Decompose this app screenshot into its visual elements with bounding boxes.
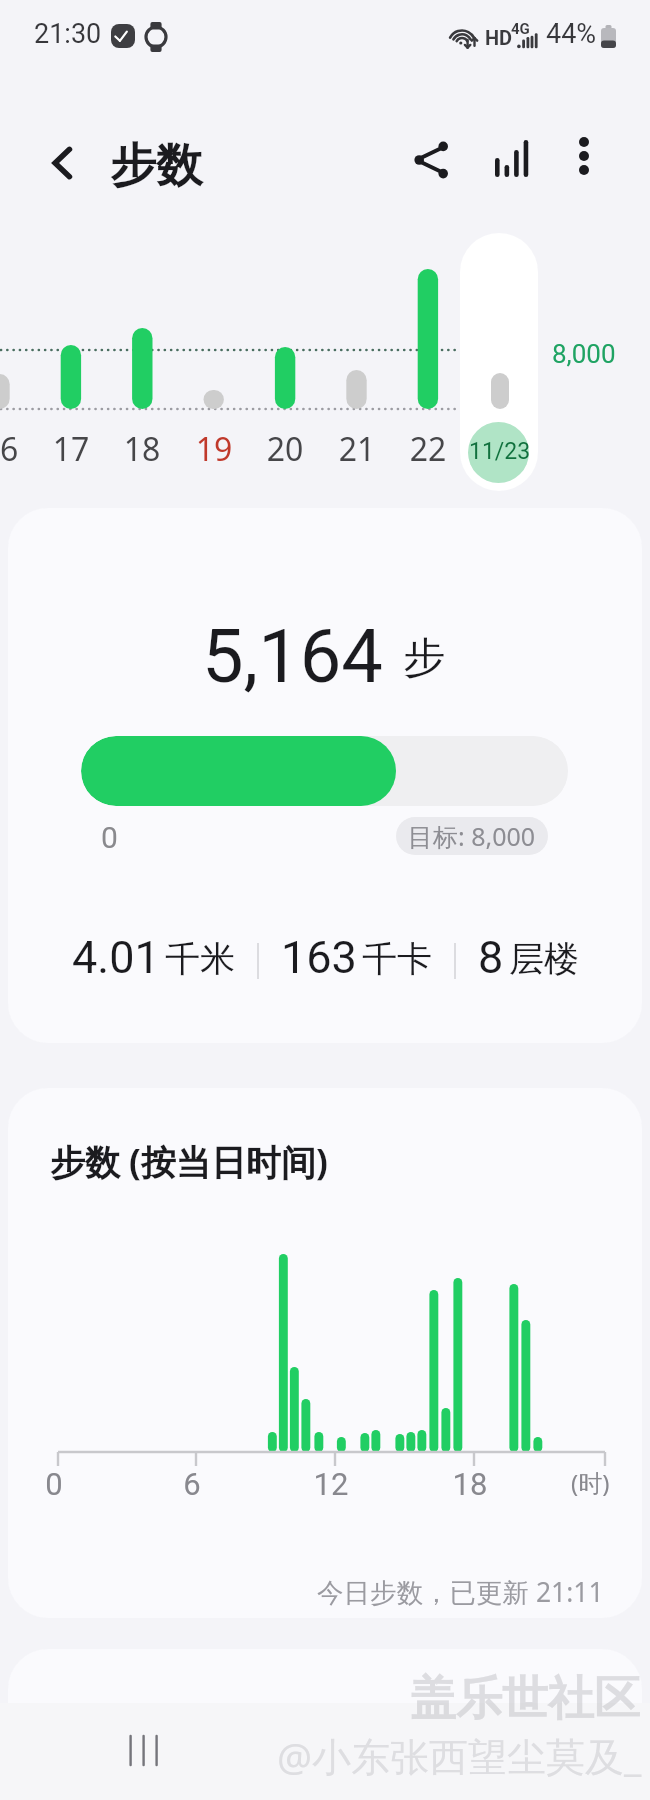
staticText: 20 [245, 427, 325, 471]
staticText: 5,164 [202, 613, 383, 700]
staticText: 22 [388, 427, 468, 471]
staticText: 今日步数，已更新 21:11 [317, 1574, 604, 1610]
staticText: HD [485, 26, 513, 49]
staticText: 17 [31, 427, 111, 471]
staticText: 步数 [110, 137, 202, 195]
button[interactable]: Chart [481, 128, 541, 188]
staticText: 步数 (按当日时间) [50, 1138, 328, 1186]
staticText: 层楼 [509, 937, 579, 981]
staticText: 千卡 [362, 937, 432, 981]
staticText: 4G [511, 20, 530, 38]
staticText: 12 [291, 1466, 371, 1502]
staticText: 8 [478, 931, 504, 984]
staticText: 千米 [165, 937, 235, 981]
staticText: 18 [430, 1466, 510, 1502]
staticText: @小东张西望尘莫及_ [277, 1729, 642, 1782]
staticText: 步 [403, 632, 445, 685]
staticText: 18 [102, 427, 182, 471]
staticText: 44% [546, 18, 597, 50]
button[interactable]: More options [556, 128, 612, 184]
button[interactable] [460, 233, 538, 491]
staticText: (时) [571, 1466, 610, 1499]
staticText: 11/23 [469, 438, 531, 465]
staticText: 21 [317, 427, 397, 471]
staticText: 盖乐世社区 [410, 1670, 640, 1728]
staticText: 6 [152, 1466, 232, 1502]
staticText: 0 [101, 820, 118, 855]
staticText: 目标: 8,000 [408, 819, 536, 853]
button[interactable]: Back [28, 128, 98, 198]
staticText: 19 [174, 427, 254, 471]
staticText: 4.01 [72, 931, 160, 984]
button[interactable] [81, 736, 568, 806]
staticText: 16 [0, 427, 40, 471]
button[interactable]: Share [400, 128, 464, 192]
staticText: 163 [281, 931, 357, 984]
button[interactable]: Recent apps [113, 1720, 173, 1780]
staticText: 0 [14, 1466, 94, 1502]
staticText: 21:30 [34, 18, 102, 50]
staticText: 8,000 [552, 339, 616, 369]
